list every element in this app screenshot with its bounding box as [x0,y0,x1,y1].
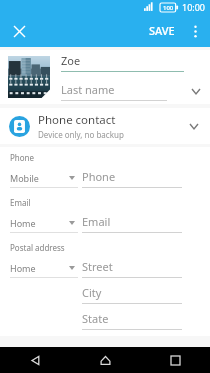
button[interactable]: Phone contact [0,108,210,144]
button[interactable]: More options [182,18,208,44]
staticText: Mobile [10,172,69,184]
staticText: 10:00 [182,1,206,13]
staticText: Phone [82,169,116,184]
staticText: Device only, no backup [38,129,124,140]
staticText: Phone [10,152,35,163]
button[interactable]: Back [0,347,70,373]
button[interactable]: Home [10,262,78,278]
button[interactable]: Mobile [10,172,78,188]
staticText: SAVE [149,23,175,38]
staticText: Street [82,259,113,274]
button[interactable]: Phone [82,169,182,188]
other: Change account [182,114,206,138]
staticText: Last name [61,82,115,97]
staticText: Email [10,197,31,208]
button[interactable]: Home [10,217,78,233]
staticText: Home [10,262,69,274]
staticText: Zoe [61,53,81,68]
button[interactable]: Expand name fields [186,81,206,101]
button[interactable]: State [82,311,182,330]
button[interactable]: Recent apps [140,347,210,373]
button[interactable]: Home [70,347,140,373]
staticText: City [82,285,102,300]
button[interactable]: Email [82,214,182,233]
staticText: Postal address [10,242,65,253]
button[interactable]: Close [6,18,32,44]
staticText: State [82,311,109,326]
staticText: Email [82,214,111,229]
staticText: Home [10,217,69,229]
button[interactable]: Contact photo [8,56,50,98]
button[interactable]: City [82,285,182,304]
staticText: 100 [163,4,174,12]
staticText: Phone contact [38,112,116,128]
button[interactable]: Street [82,259,182,278]
button[interactable]: SAVE [142,17,182,44]
